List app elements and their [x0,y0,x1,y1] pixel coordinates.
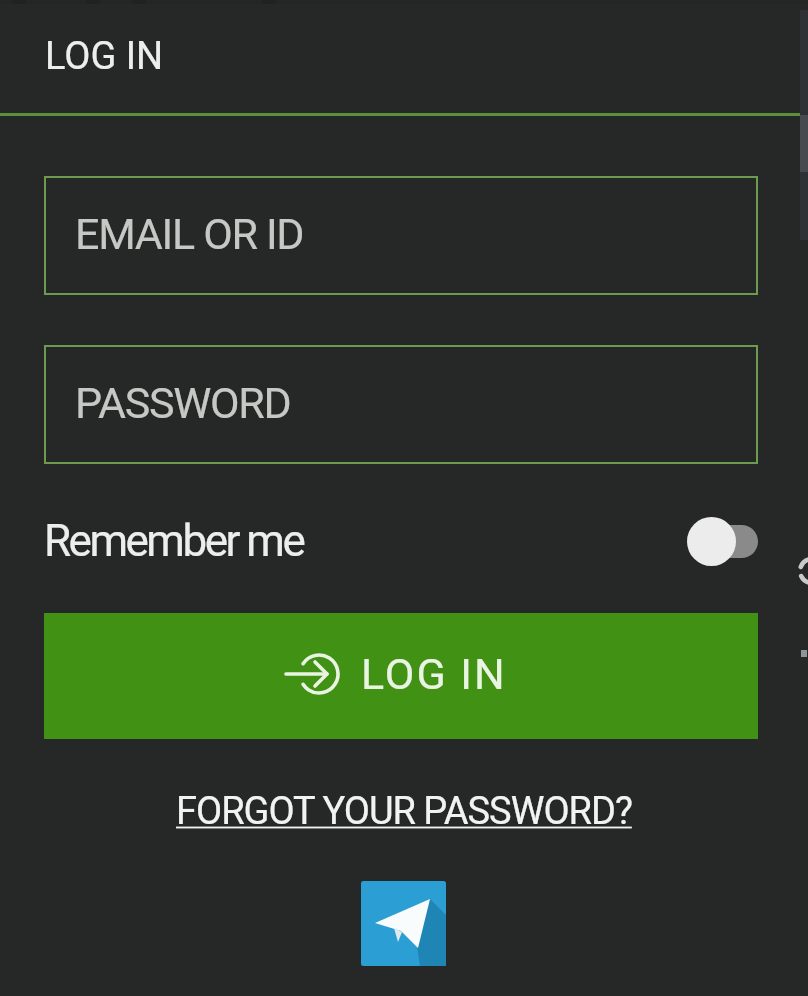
button[interactable]: LOG IN [44,613,758,739]
staticText: LOG IN [361,649,507,699]
button[interactable] [687,516,758,566]
button[interactable]: PASSWORD [44,345,758,464]
button[interactable] [361,881,446,966]
button[interactable]: EMAIL OR ID [44,176,758,295]
button[interactable]: FORGOT YOUR PASSWORD? [176,789,632,834]
staticText: PASSWORD [75,378,291,428]
staticText: LOG IN [45,34,164,79]
staticText: Remember me [44,515,304,567]
staticText: EMAIL OR ID [75,209,304,259]
